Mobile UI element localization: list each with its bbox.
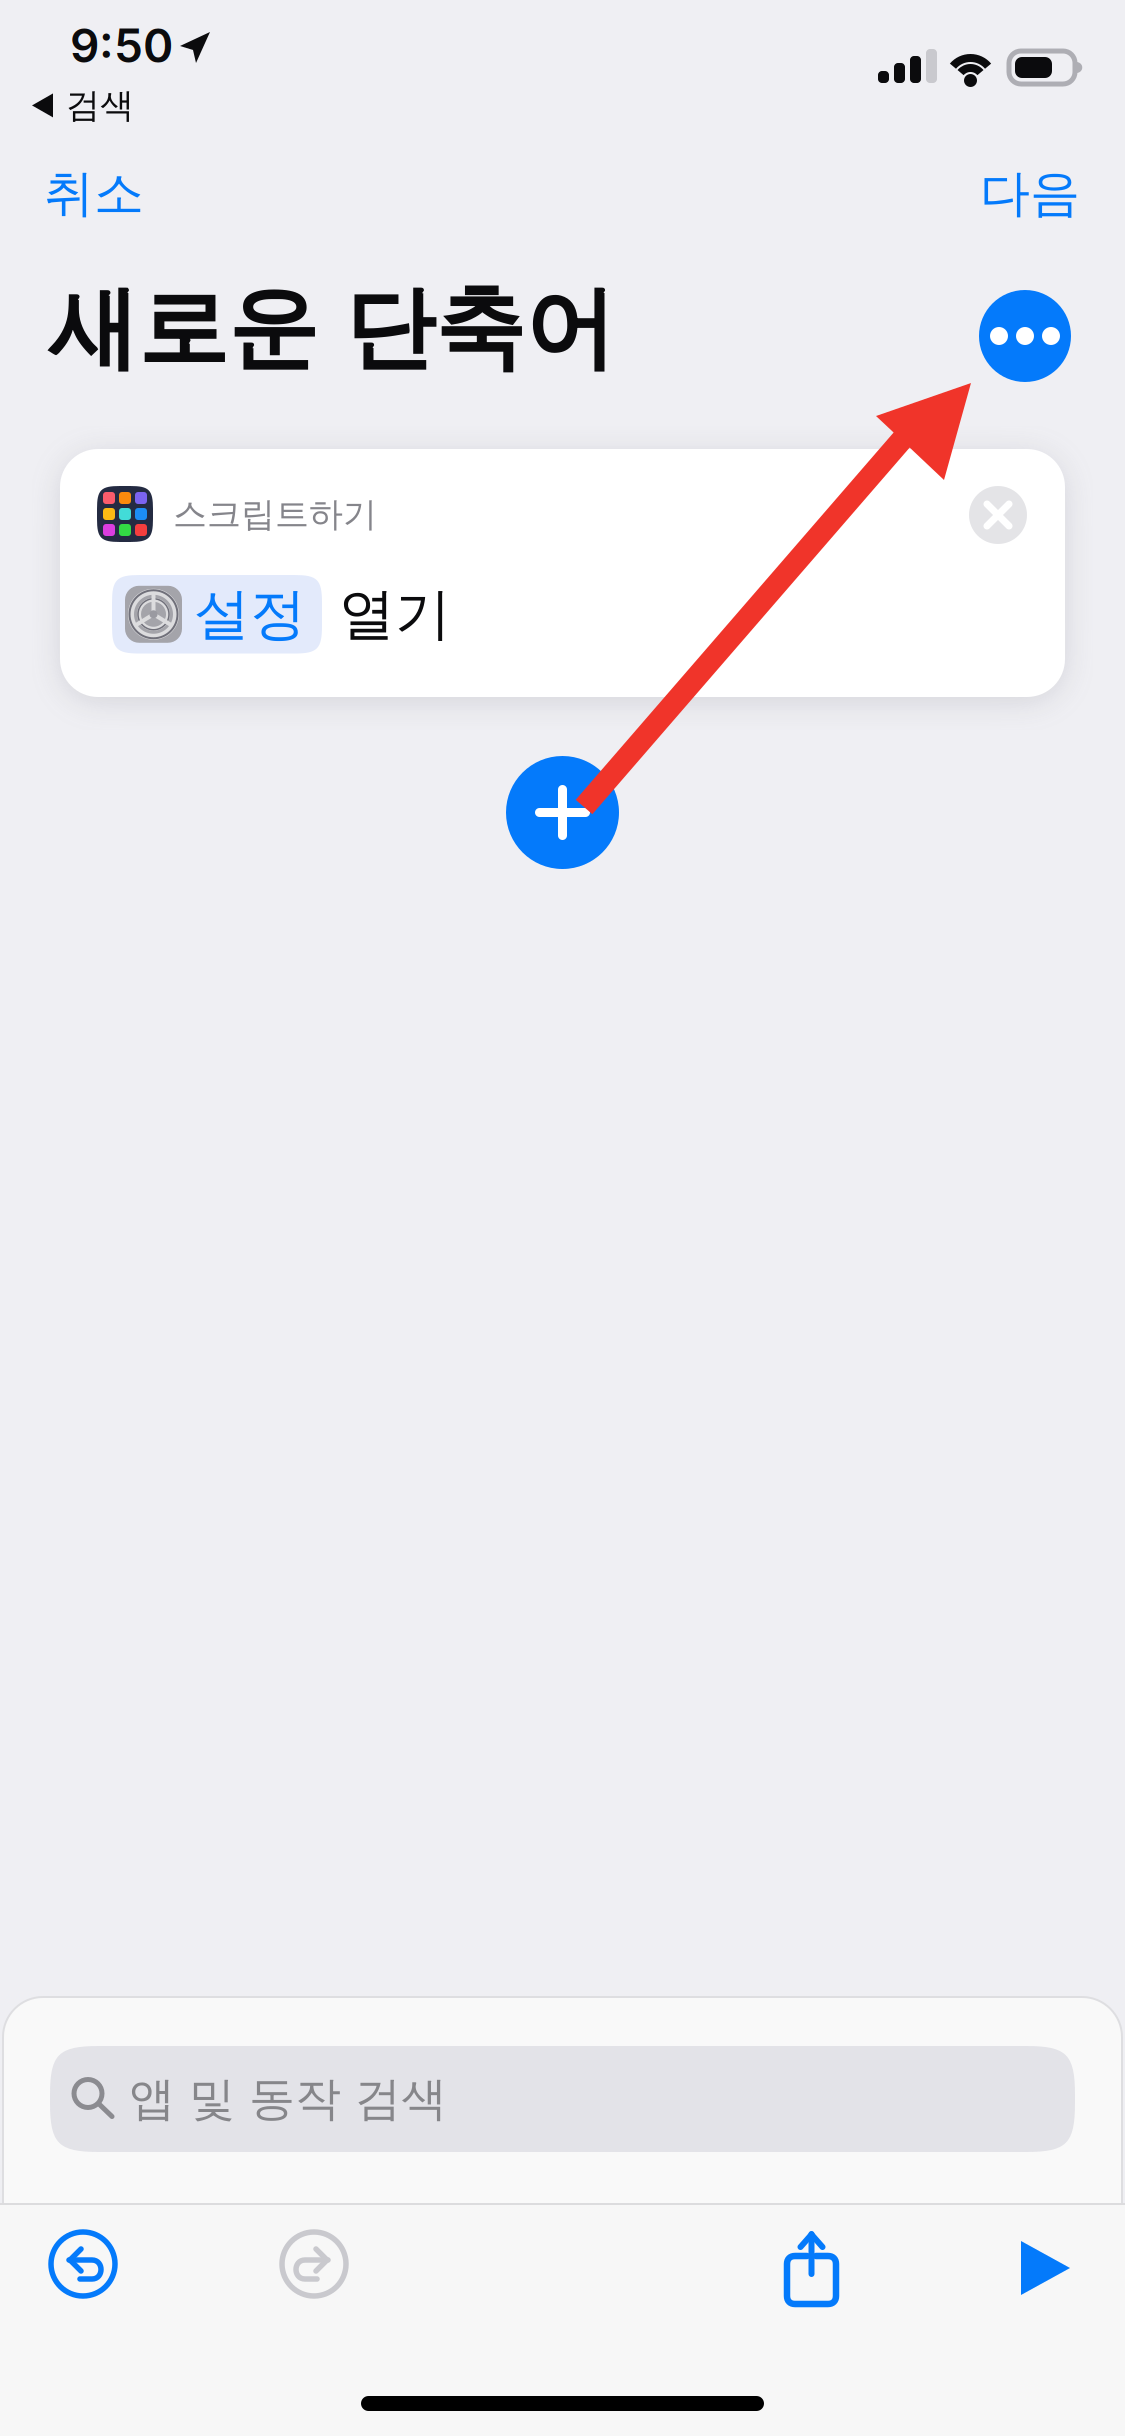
staticText: 취소 xyxy=(44,162,144,225)
staticText: 스크립트하기 xyxy=(173,493,377,536)
button[interactable]: Remove action xyxy=(969,486,1027,544)
button[interactable]: Add action xyxy=(506,756,619,869)
button[interactable]: 취소 xyxy=(26,152,162,235)
button[interactable]: 검색 xyxy=(32,80,148,131)
staticText: 다음 xyxy=(980,162,1080,225)
staticText: 열기 xyxy=(322,579,451,649)
button[interactable]: Share xyxy=(784,2231,839,2304)
button[interactable]: More options xyxy=(979,290,1071,382)
staticText: 새로운 단축어 xyxy=(48,272,615,385)
button[interactable]: Run shortcut xyxy=(1018,2237,1072,2299)
button[interactable]: 다음 xyxy=(962,152,1098,235)
button[interactable]: 앱 및 동작 검색 xyxy=(50,2046,1075,2152)
button[interactable]: Undo xyxy=(51,2232,115,2296)
staticText: 9:50 xyxy=(70,18,173,74)
staticText: 설정 xyxy=(194,579,306,649)
button[interactable]: Redo xyxy=(282,2232,346,2296)
staticText: 앱 및 동작 검색 xyxy=(129,2070,447,2128)
staticText: 검색 xyxy=(66,84,134,127)
